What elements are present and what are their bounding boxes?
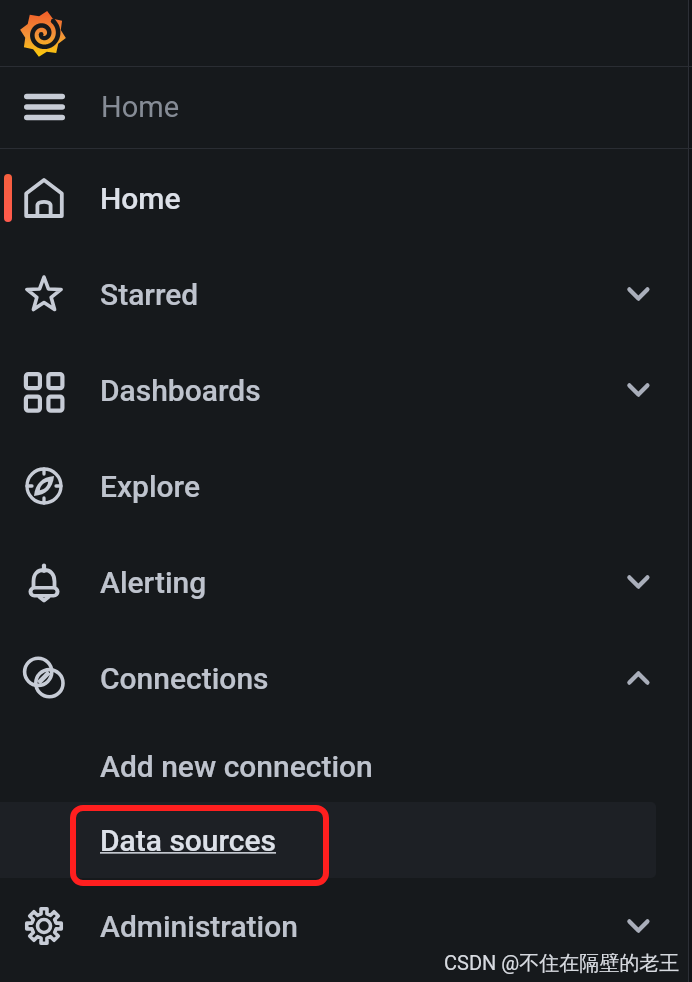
staticText: CSDN @不住在隔壁的老王 [444, 951, 680, 976]
button[interactable]: Data sources [0, 802, 692, 878]
other: Collapse [618, 658, 658, 698]
staticText: Home [100, 181, 181, 216]
staticText: Administration [100, 909, 298, 944]
staticText: Dashboards [100, 373, 261, 408]
other: Expand [618, 370, 658, 410]
button[interactable]: Dashboards [0, 342, 692, 438]
staticText: Explore [100, 469, 200, 504]
staticText: Data sources [100, 823, 277, 858]
staticText: Starred [100, 277, 199, 312]
staticText: Connections [100, 661, 269, 696]
button[interactable]: Administration [0, 880, 692, 972]
button[interactable]: Add new connection [0, 730, 692, 802]
other: Expand [618, 906, 658, 946]
button[interactable]: Toggle menu [0, 67, 88, 147]
button[interactable]: Connections [0, 630, 692, 726]
other: Expand [618, 562, 658, 602]
other: Expand [618, 274, 658, 314]
button[interactable]: Starred [0, 246, 692, 342]
staticText: Add new connection [100, 749, 373, 784]
button[interactable]: Home [0, 150, 692, 246]
staticText: Alerting [100, 565, 207, 600]
staticText: Home [101, 90, 180, 124]
button[interactable]: Grafana home [12, 0, 74, 66]
button[interactable]: Explore [0, 438, 692, 534]
button[interactable]: Alerting [0, 534, 692, 630]
